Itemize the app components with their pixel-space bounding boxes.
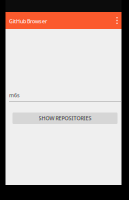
staticText: m6s (9, 92, 20, 99)
button[interactable]: SHOW REPOSITORIES (12, 112, 117, 124)
staticText: GitHub Browser (9, 18, 47, 25)
staticText: SHOW REPOSITORIES (38, 115, 91, 122)
button[interactable]: More options (112, 12, 121, 29)
button[interactable]: m6s (9, 88, 121, 102)
